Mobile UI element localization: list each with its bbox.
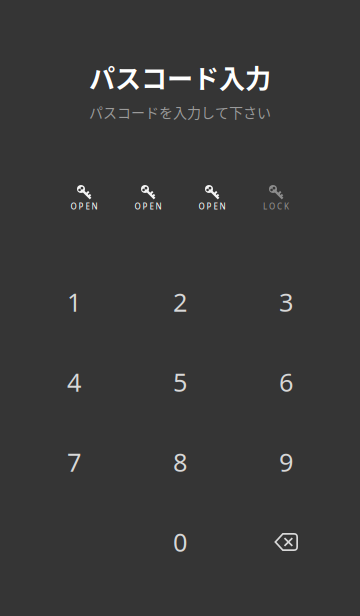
staticText: 4 (67, 365, 81, 399)
staticText: 2 (173, 285, 187, 319)
button[interactable]: 5 (127, 342, 233, 422)
staticText: パスコードを入力して下さい (89, 102, 271, 122)
staticText: 7 (67, 445, 81, 479)
button[interactable]: 9 (233, 422, 339, 502)
staticText: O P E N (134, 201, 161, 212)
staticText: パスコード入力 (89, 58, 271, 96)
button[interactable]: 6 (233, 342, 339, 422)
button[interactable]: 8 (127, 422, 233, 502)
staticText: 0 (173, 525, 187, 559)
staticText: O P E N (70, 201, 97, 212)
staticText: O P E N (198, 201, 225, 212)
button[interactable]: 7 (21, 422, 127, 502)
button[interactable]: 2 (127, 262, 233, 342)
staticText: 5 (173, 365, 187, 399)
staticText: 6 (279, 365, 293, 399)
button[interactable]: 3 (233, 262, 339, 342)
button[interactable]: 1 (21, 262, 127, 342)
staticText: 3 (279, 285, 293, 319)
staticText: 1 (67, 285, 81, 319)
staticText: 9 (279, 445, 293, 479)
button[interactable]: 4 (21, 342, 127, 422)
staticText: 8 (173, 445, 187, 479)
button[interactable]: Delete (233, 502, 339, 582)
button[interactable]: 0 (127, 502, 233, 582)
staticText: L O C K (263, 201, 289, 212)
